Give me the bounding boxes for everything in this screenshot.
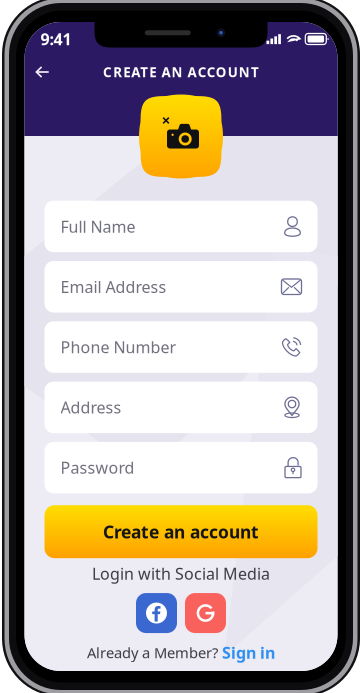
staticText: CREATE AN ACCOUNT	[103, 63, 259, 81]
button[interactable]: Create an account	[44, 505, 317, 558]
staticText: Full Name	[60, 216, 135, 237]
staticText: Sign in	[222, 642, 275, 663]
staticText: Email Address	[60, 276, 166, 297]
staticText: Phone Number	[60, 336, 176, 358]
staticText: 9:41	[40, 28, 71, 50]
staticText: Create an account	[103, 520, 259, 543]
button[interactable]: Full Name	[44, 201, 317, 252]
button[interactable]: Back	[24, 56, 60, 88]
staticText: Already a Member?	[87, 643, 218, 662]
button[interactable]: Phone Number	[44, 321, 317, 373]
button[interactable]: Address	[44, 382, 317, 433]
button[interactable]: Email Address	[44, 261, 317, 312]
button[interactable]: Sign up with Facebook	[136, 593, 177, 633]
button[interactable]: Sign up with Google	[185, 593, 226, 633]
button[interactable]: Password	[44, 442, 317, 493]
button[interactable]: Add profile photo	[140, 96, 221, 177]
staticText: Address	[60, 397, 121, 418]
staticText: Password	[60, 457, 134, 478]
button[interactable]: Sign in	[222, 642, 275, 663]
staticText: Login with Social Media	[92, 563, 270, 584]
